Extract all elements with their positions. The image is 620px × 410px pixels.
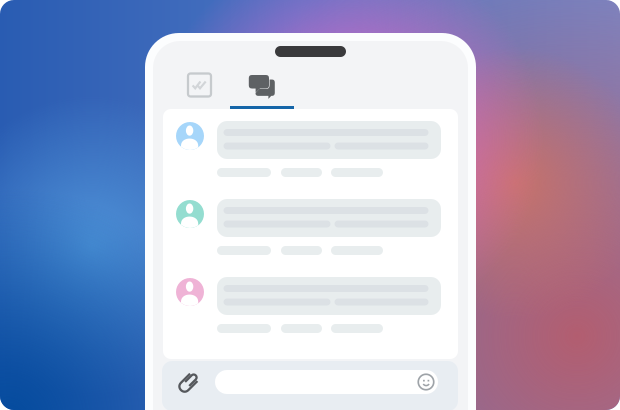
button[interactable]: Chats: [230, 70, 294, 110]
button[interactable]: Attach file: [174, 366, 204, 398]
button[interactable]: Tasks: [170, 64, 228, 106]
button[interactable]: Emoji: [413, 369, 439, 395]
